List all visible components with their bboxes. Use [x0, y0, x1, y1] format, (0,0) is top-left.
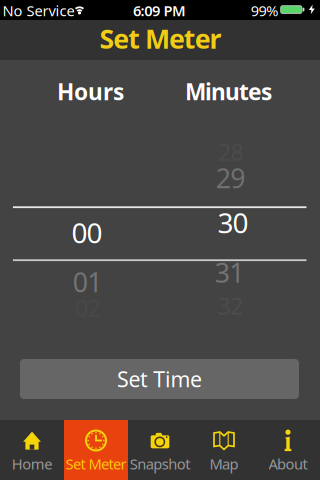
staticText: 30 [217, 204, 249, 241]
staticText: Minutes [185, 76, 272, 106]
staticText: 01 [73, 264, 102, 300]
staticText: Map [209, 454, 238, 474]
staticText: Hours [57, 76, 124, 106]
staticText: 00 [71, 214, 103, 251]
staticText: 99% [251, 1, 278, 20]
staticText: Home [12, 454, 52, 474]
staticText: No Service [2, 1, 74, 20]
staticText: 6:09 PM [133, 1, 186, 20]
staticText: 31 [215, 255, 244, 290]
staticText: Snapshot [130, 454, 190, 474]
staticText: 29 [216, 160, 245, 196]
staticText: 32 [218, 291, 243, 321]
button[interactable]: About [256, 420, 320, 480]
button[interactable]: Set Time [20, 359, 299, 399]
button[interactable]: Home [0, 420, 64, 480]
staticText: Set Meter [99, 21, 222, 56]
button[interactable]: Set Meter [64, 420, 128, 480]
staticText: Set Meter [65, 454, 126, 474]
button[interactable]: Snapshot [128, 420, 192, 480]
staticText: Set Time [117, 365, 202, 393]
button[interactable]: Map [192, 420, 256, 480]
staticText: About [268, 454, 307, 474]
